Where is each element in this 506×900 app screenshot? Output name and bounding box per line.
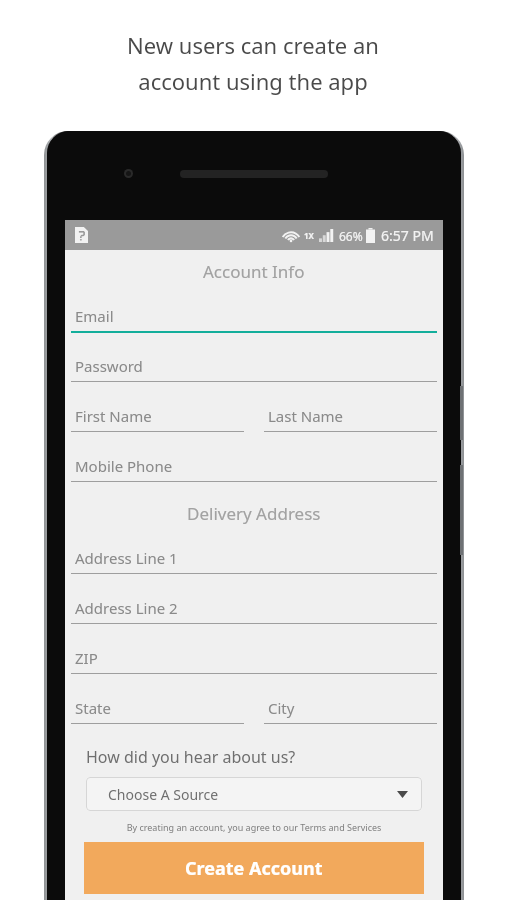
staticText: Address Line 1 bbox=[75, 548, 178, 568]
button[interactable]: Choose A Source bbox=[86, 777, 422, 811]
staticText: 6:57 PM bbox=[381, 226, 434, 245]
staticText: account using the app bbox=[138, 66, 368, 96]
staticText: Choose A Source bbox=[108, 785, 219, 804]
staticText: Account Info bbox=[203, 260, 305, 283]
staticText: ZIP bbox=[75, 648, 98, 668]
staticText: By creating an account, you agree to our… bbox=[65, 821, 443, 833]
staticText: Address Line 2 bbox=[75, 598, 178, 618]
button[interactable]: ZIP bbox=[65, 634, 443, 684]
button[interactable]: Last Name bbox=[258, 392, 443, 432]
staticText: First Name bbox=[75, 406, 152, 426]
button[interactable]: State bbox=[65, 684, 250, 724]
button[interactable]: City bbox=[258, 684, 443, 724]
staticText: City bbox=[268, 698, 295, 718]
button[interactable]: Password bbox=[65, 342, 443, 392]
staticText: Email bbox=[75, 306, 114, 326]
staticText: Mobile Phone bbox=[75, 456, 173, 476]
staticText: How did you hear about us? bbox=[86, 746, 296, 768]
staticText: 66% bbox=[339, 228, 363, 244]
button[interactable]: Address Line 1 bbox=[65, 534, 443, 584]
staticText: Create Account bbox=[185, 856, 323, 881]
button[interactable]: First Name bbox=[65, 392, 250, 432]
staticText: 1X bbox=[304, 230, 314, 241]
staticText: Delivery Address bbox=[187, 502, 321, 525]
staticText: New users can create an bbox=[127, 30, 379, 60]
staticText: State bbox=[75, 698, 111, 718]
staticText: Password bbox=[75, 356, 143, 376]
button[interactable]: Address Line 2 bbox=[65, 584, 443, 634]
button[interactable]: Mobile Phone bbox=[65, 442, 443, 492]
staticText: Last Name bbox=[268, 406, 344, 426]
button[interactable]: Email bbox=[65, 292, 443, 342]
button[interactable]: Create Account bbox=[84, 842, 424, 894]
